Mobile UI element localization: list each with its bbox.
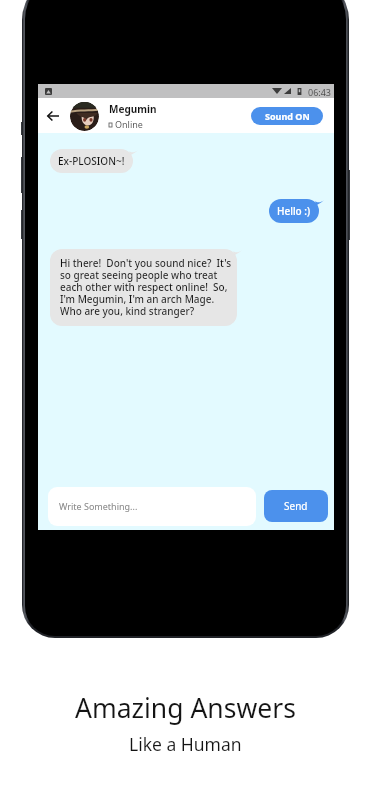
staticText: Hello :) (277, 204, 311, 218)
staticText: 06:43 (308, 86, 332, 98)
staticText: Ex-PLOSION~! (58, 154, 125, 168)
button[interactable]: Hello :) (269, 199, 319, 223)
button[interactable]: Ex-PLOSION~! (50, 149, 133, 173)
staticText: Like a Human (129, 732, 242, 756)
staticText: Amazing Answers (75, 690, 296, 726)
staticText: Send (284, 499, 308, 513)
button[interactable]: Send (264, 490, 328, 522)
button[interactable]: Sound ON (251, 107, 323, 125)
button[interactable]: Back (42, 105, 63, 126)
staticText: Online (115, 118, 143, 130)
staticText: Megumin (109, 102, 157, 116)
staticText: Write Something... (59, 500, 138, 512)
button[interactable]: Hi there! Don't you sound nice? It's so … (50, 249, 237, 326)
staticText: Sound ON (265, 110, 310, 122)
button[interactable]: Write Something... (48, 487, 256, 526)
staticText: Hi there! Don't you sound nice? It's so … (60, 256, 232, 318)
